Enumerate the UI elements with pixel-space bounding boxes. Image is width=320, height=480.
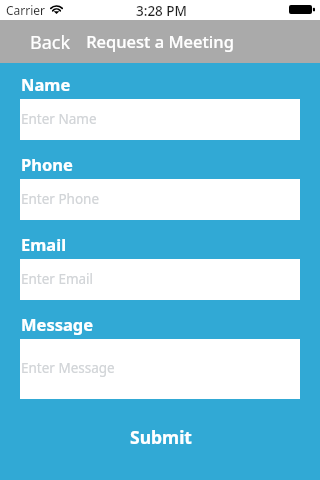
button[interactable]: Enter Email (20, 259, 300, 300)
staticText: Carrier (6, 2, 46, 18)
staticText: Submit (130, 425, 192, 449)
staticText: Phone (21, 153, 73, 175)
staticText: Request a Meeting (0, 30, 320, 52)
other: Battery full (289, 5, 315, 14)
staticText: Message (21, 313, 94, 335)
staticText: Enter Email (21, 270, 94, 288)
other: Wi-Fi signal (50, 5, 63, 14)
button[interactable]: Back (30, 20, 71, 63)
staticText: Enter Name (21, 110, 97, 128)
staticText: Name (21, 73, 71, 95)
staticText: Enter Phone (21, 190, 100, 208)
button[interactable]: Submit (1, 415, 320, 459)
staticText: 3:28 PM (136, 2, 187, 20)
button[interactable]: Enter Message (20, 339, 300, 399)
staticText: Enter Message (21, 359, 115, 377)
button[interactable]: Enter Name (20, 99, 300, 140)
staticText: Back (30, 30, 71, 55)
button[interactable]: Enter Phone (20, 179, 300, 220)
staticText: Email (21, 233, 67, 255)
